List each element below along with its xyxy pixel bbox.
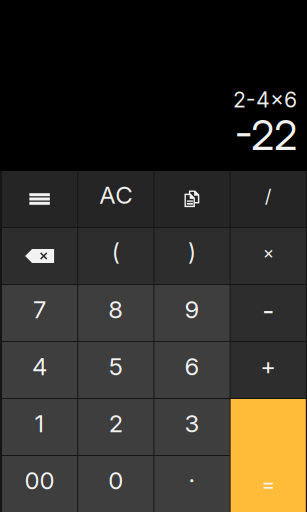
button[interactable]: 0 (78, 456, 153, 512)
button[interactable]: 2 (78, 399, 153, 455)
button[interactable]: 6 (154, 342, 230, 398)
button[interactable]: AC (78, 171, 153, 227)
button[interactable]: Copy (154, 171, 230, 227)
staticText: 8 (108, 295, 123, 324)
staticText: × (263, 242, 274, 263)
staticText: ( (112, 239, 120, 266)
button[interactable]: · (154, 456, 230, 512)
staticText: 3 (184, 409, 199, 438)
button[interactable]: 00 (2, 456, 77, 512)
button[interactable]: + (231, 342, 306, 398)
staticText: 7 (33, 295, 46, 324)
staticText: -22 (235, 110, 297, 160)
button[interactable]: 8 (78, 285, 153, 341)
staticText: 5 (109, 352, 123, 381)
button[interactable]: 4 (2, 342, 77, 398)
staticText: AC (99, 180, 132, 209)
staticText: 2 (109, 409, 123, 438)
button[interactable]: = (231, 399, 306, 512)
button[interactable]: / (231, 171, 306, 227)
button[interactable]: ) (154, 228, 230, 284)
button[interactable]: ( (78, 228, 153, 284)
staticText: = (261, 471, 275, 497)
staticText: 0 (108, 466, 123, 495)
button[interactable]: Delete (2, 228, 77, 284)
staticText: - (262, 294, 274, 327)
staticText: 1 (35, 409, 45, 438)
button[interactable]: 3 (154, 399, 230, 455)
staticText: ) (188, 239, 196, 266)
button[interactable]: - (231, 285, 306, 341)
staticText: · (188, 466, 195, 495)
staticText: 6 (184, 352, 199, 381)
button[interactable]: 7 (2, 285, 77, 341)
staticText: 00 (25, 466, 55, 495)
button[interactable]: 5 (78, 342, 153, 398)
button[interactable]: 1 (2, 399, 77, 455)
button[interactable]: 9 (154, 285, 230, 341)
staticText: 9 (184, 295, 199, 324)
button[interactable]: Menu (2, 171, 77, 227)
staticText: 4 (32, 352, 47, 381)
staticText: + (260, 352, 276, 381)
staticText: / (265, 185, 272, 207)
staticText: 2-4x6 (233, 87, 297, 113)
button[interactable]: × (231, 228, 306, 284)
